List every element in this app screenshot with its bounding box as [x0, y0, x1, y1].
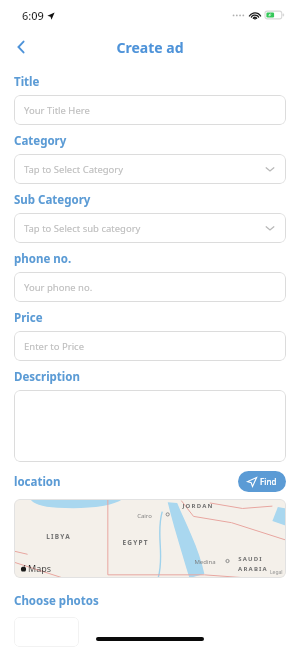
staticText: Your phone no.: [24, 281, 93, 294]
staticText: Sub Category: [14, 192, 91, 208]
button[interactable]: Your phone no.: [14, 272, 286, 302]
button[interactable]: Find: [238, 471, 286, 492]
button[interactable]: Tap to Select Category: [14, 154, 286, 184]
staticText: Find: [260, 476, 277, 487]
button[interactable]: Tap to Select sub category: [14, 213, 286, 243]
staticText: JORDAN: [182, 502, 214, 510]
staticText: EGYPT: [122, 538, 149, 547]
staticText: LIBYA: [46, 532, 71, 541]
button[interactable]: Add photo: [14, 617, 79, 647]
staticText: Medina: [194, 558, 216, 566]
staticText: Legal: [270, 569, 283, 576]
staticText: Price: [14, 310, 43, 326]
staticText: ARABIA: [238, 565, 268, 573]
button[interactable]: Enter to Price: [14, 331, 286, 361]
button[interactable]: [14, 390, 286, 462]
staticText: Maps: [28, 562, 52, 574]
button[interactable]: Back: [6, 32, 36, 62]
staticText: Cairo: [137, 512, 152, 520]
button[interactable]: Your Title Here: [14, 95, 286, 125]
staticText: Your Title Here: [24, 104, 90, 117]
staticText: Title: [14, 74, 40, 90]
button[interactable]: Map: [14, 499, 286, 578]
staticText: 6:09: [22, 8, 44, 23]
staticText: Create ad: [116, 38, 184, 57]
staticText: Choose photos: [14, 593, 99, 609]
staticText: Description: [14, 369, 80, 385]
staticText: SAUDI: [238, 555, 263, 563]
staticText: Tap to Select sub category: [24, 222, 141, 235]
staticText: location: [14, 474, 61, 490]
staticText: Tap to Select Category: [24, 163, 124, 176]
staticText: Enter to Price: [24, 340, 85, 353]
staticText: Category: [14, 133, 67, 149]
staticText: phone no.: [14, 251, 72, 267]
